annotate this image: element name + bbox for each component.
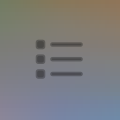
button[interactable]: List	[0, 0, 120, 120]
